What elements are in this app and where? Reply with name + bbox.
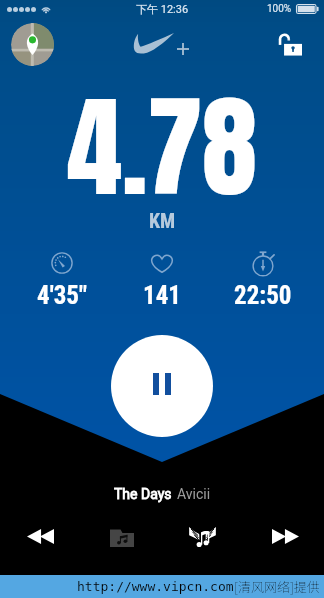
staticText: 4.78 xyxy=(67,63,257,213)
button[interactable]: Previous track xyxy=(18,514,62,558)
button[interactable]: Music library xyxy=(100,515,144,559)
staticText: 22:50 xyxy=(234,281,292,310)
staticText: KM xyxy=(149,209,176,229)
button[interactable]: Next track xyxy=(263,514,307,558)
staticText: http://www.vipcn.com xyxy=(77,579,234,594)
button[interactable]: Map xyxy=(11,23,54,66)
staticText: Avicii xyxy=(177,486,211,502)
staticText: 下午 12:36 xyxy=(136,2,189,16)
button[interactable]: Power song xyxy=(180,515,224,559)
staticText: The Days xyxy=(114,486,172,502)
staticText: 141 xyxy=(143,281,181,310)
staticText: [清风网络]提供 xyxy=(234,577,320,596)
button[interactable]: Pause xyxy=(111,335,213,437)
staticText: 4'35" xyxy=(37,281,87,310)
staticText: 100% xyxy=(267,3,292,15)
button[interactable]: Unlock xyxy=(274,29,306,61)
